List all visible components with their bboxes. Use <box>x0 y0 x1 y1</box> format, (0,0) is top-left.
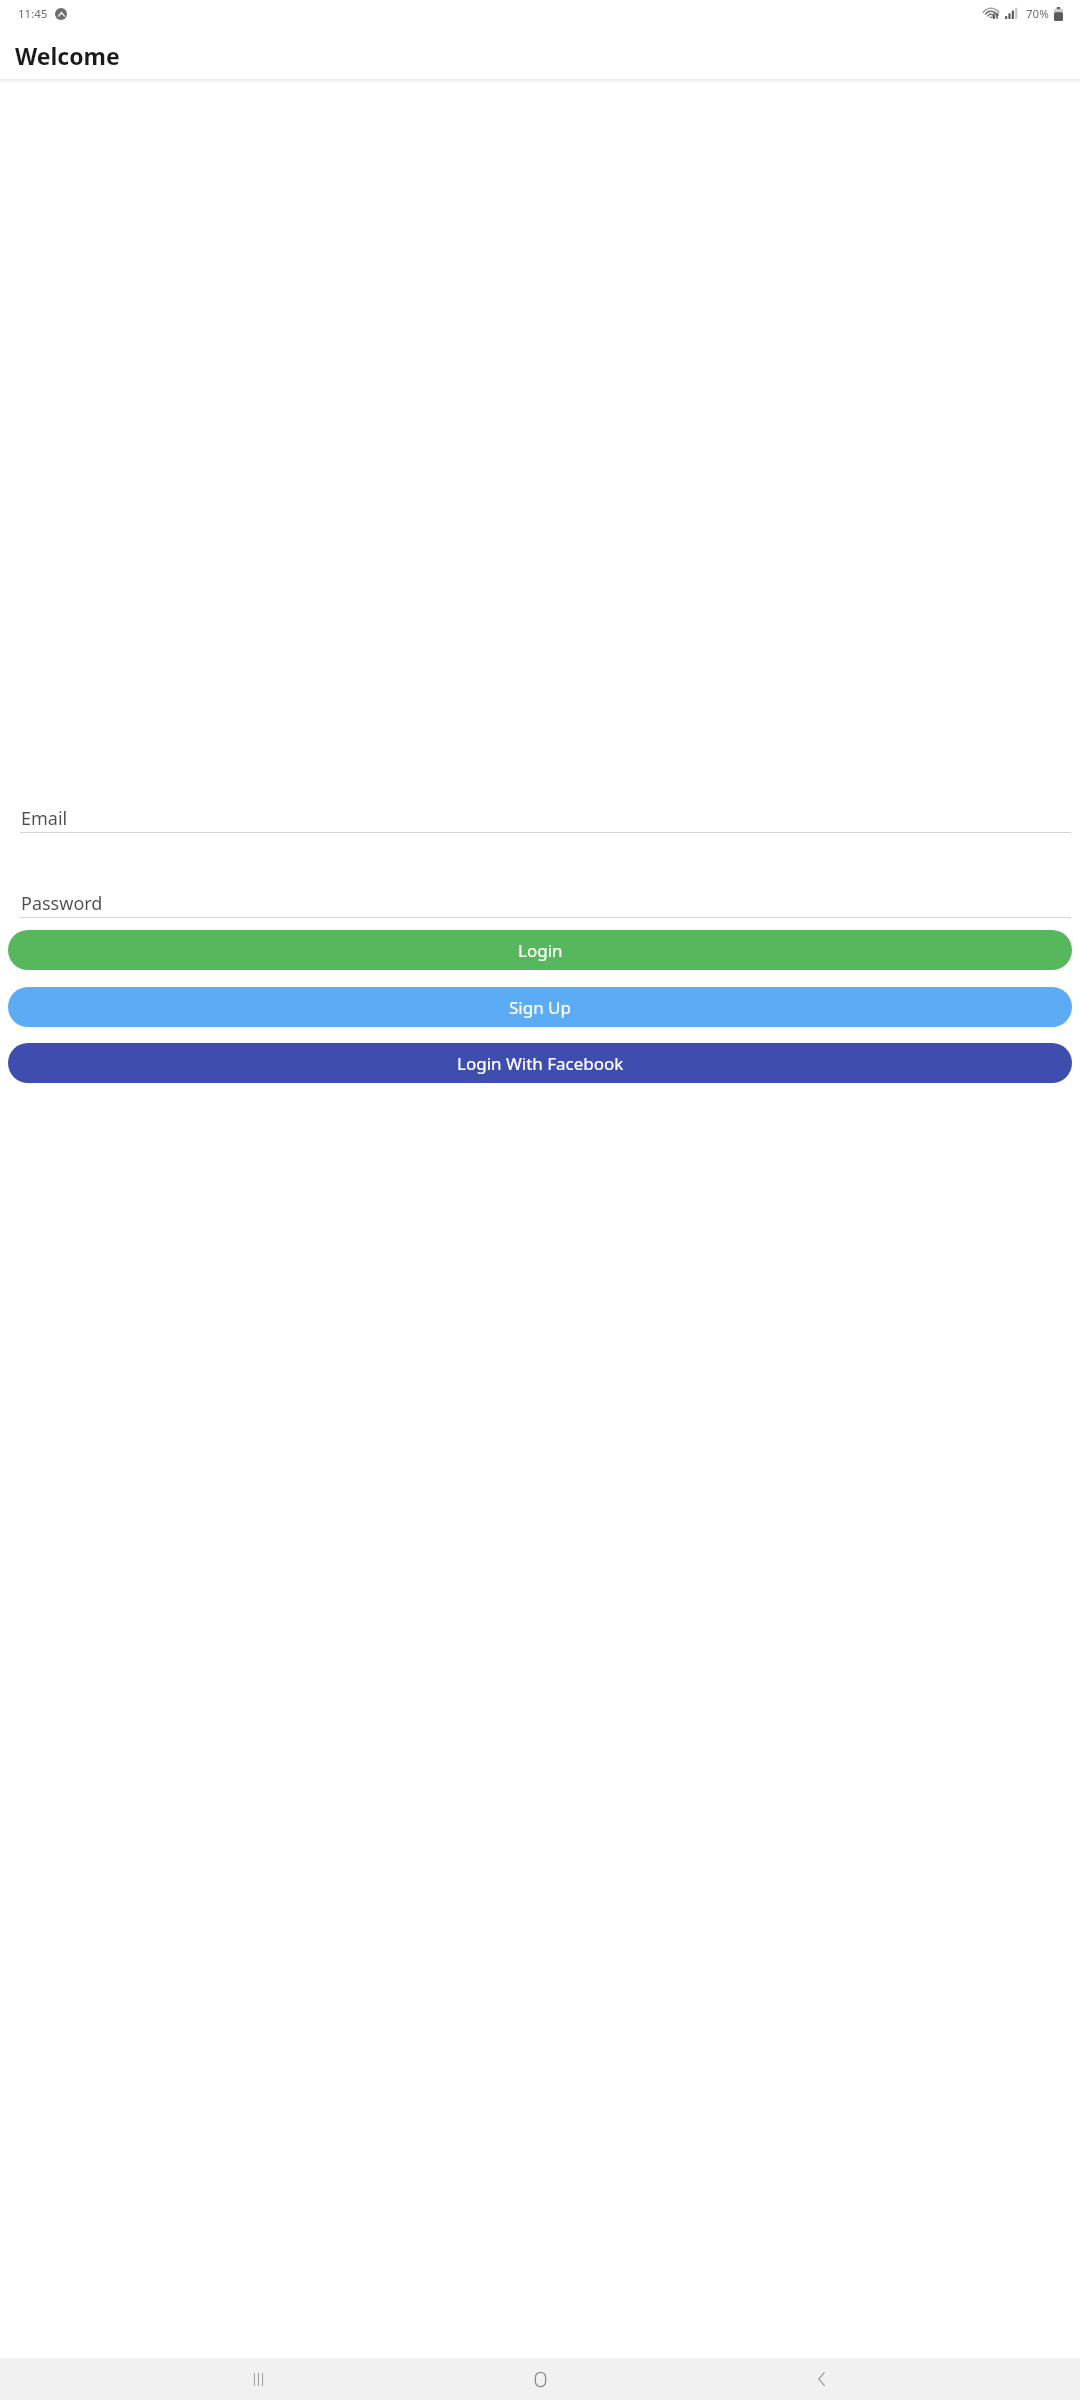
staticText: Login <box>518 939 563 962</box>
button[interactable]: Login With Facebook <box>8 1043 1072 1083</box>
button[interactable]: Sign Up <box>8 987 1072 1027</box>
staticText: 70% <box>1026 6 1049 22</box>
staticText: Login With Facebook <box>457 1052 624 1075</box>
button[interactable]: Login <box>8 930 1072 970</box>
button[interactable]: Home <box>516 2358 564 2400</box>
staticText: Sign Up <box>509 996 571 1019</box>
button[interactable]: Back <box>798 2358 846 2400</box>
staticText: Password <box>21 891 103 916</box>
button[interactable]: Email <box>20 806 1071 833</box>
button[interactable]: Recents <box>234 2358 282 2400</box>
staticText: Email <box>21 806 68 831</box>
button[interactable]: Password <box>20 891 1071 918</box>
staticText: Welcome <box>15 40 120 71</box>
staticText: 11:45 <box>18 6 48 22</box>
